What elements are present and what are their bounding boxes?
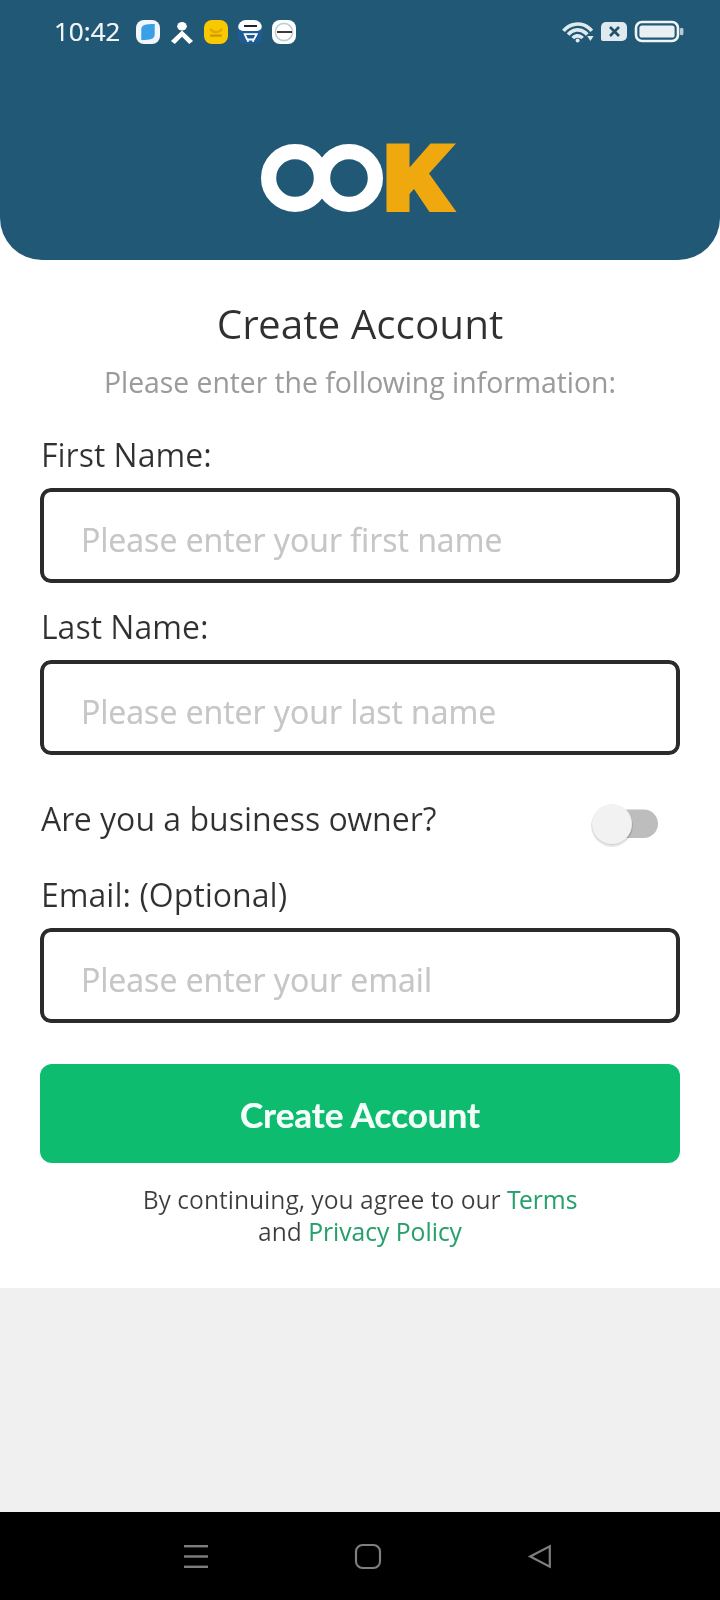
staticText: Are you a business owner? (41, 797, 437, 841)
button[interactable]: Recent apps (156, 1516, 236, 1596)
staticText: Email: (Optional) (41, 873, 288, 917)
button[interactable]: Please enter your first name (40, 488, 680, 583)
button[interactable]: Back (500, 1516, 580, 1596)
staticText: Create Account (240, 1093, 481, 1135)
staticText: Please enter your email (81, 958, 433, 1002)
staticText: Please enter your last name (81, 690, 497, 734)
staticText: Create Account (0, 296, 720, 351)
button[interactable]: By continuing, you agree to our Terms an… (0, 1183, 720, 1249)
staticText: First Name: (41, 433, 212, 477)
staticText: Last Name: (41, 605, 209, 649)
button[interactable]: Please enter your last name (40, 660, 680, 755)
staticText: Please enter the following information: (0, 363, 720, 402)
button[interactable]: Are you a business owner toggle (586, 796, 672, 852)
staticText: 10:42 (54, 13, 121, 48)
staticText: Please enter your first name (81, 518, 503, 562)
button[interactable]: Create Account (40, 1064, 680, 1163)
button[interactable]: Home (328, 1516, 408, 1596)
button[interactable]: Please enter your email (40, 928, 680, 1023)
